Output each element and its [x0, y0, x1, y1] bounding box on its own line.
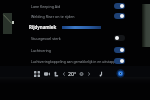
button[interactable]: Luchtveringkoppeling aan gemakkelijk in …	[114, 58, 125, 64]
button[interactable]: Luchtvering toggle	[114, 47, 125, 53]
button[interactable]: Stuurgevoel sterk	[0, 33, 150, 43]
button[interactable]: Decrease temperature	[61, 69, 67, 78]
button[interactable]: Camera	[43, 69, 51, 78]
button[interactable]: Fan	[78, 69, 85, 78]
button[interactable]: Seat	[52, 69, 60, 78]
button[interactable]: Apps	[33, 69, 41, 78]
staticText: Lane Keeping Aid	[31, 4, 61, 9]
button[interactable]: Now playing	[116, 69, 125, 78]
button[interactable]: Welding Riser on te rijden	[0, 11, 150, 21]
button[interactable]: 20°	[68, 70, 77, 77]
staticText: Luchtveringkoppeling aan gemakkelijk in …	[31, 59, 120, 64]
button[interactable]: Welding Riser on te rijden toggle	[114, 13, 125, 19]
staticText: Rijdynamiek	[29, 24, 57, 30]
button[interactable]: Media	[97, 69, 104, 78]
button[interactable]: Luchtvering	[0, 45, 150, 55]
button[interactable]: Stuurgevoel sterk toggle	[114, 35, 125, 41]
button[interactable]: Luchtveringkoppeling aan gemakkelijk in …	[0, 56, 150, 66]
staticText: Welding Riser on te rijden	[31, 14, 75, 19]
staticText: Stuurgevoel sterk	[31, 36, 61, 41]
button[interactable]: Lane Keeping Aid toggle	[114, 3, 125, 9]
staticText: Luchtvering	[31, 48, 52, 53]
button[interactable]: Increase temperature	[86, 69, 92, 78]
button[interactable]: Lane Keeping Aid	[0, 1, 150, 11]
